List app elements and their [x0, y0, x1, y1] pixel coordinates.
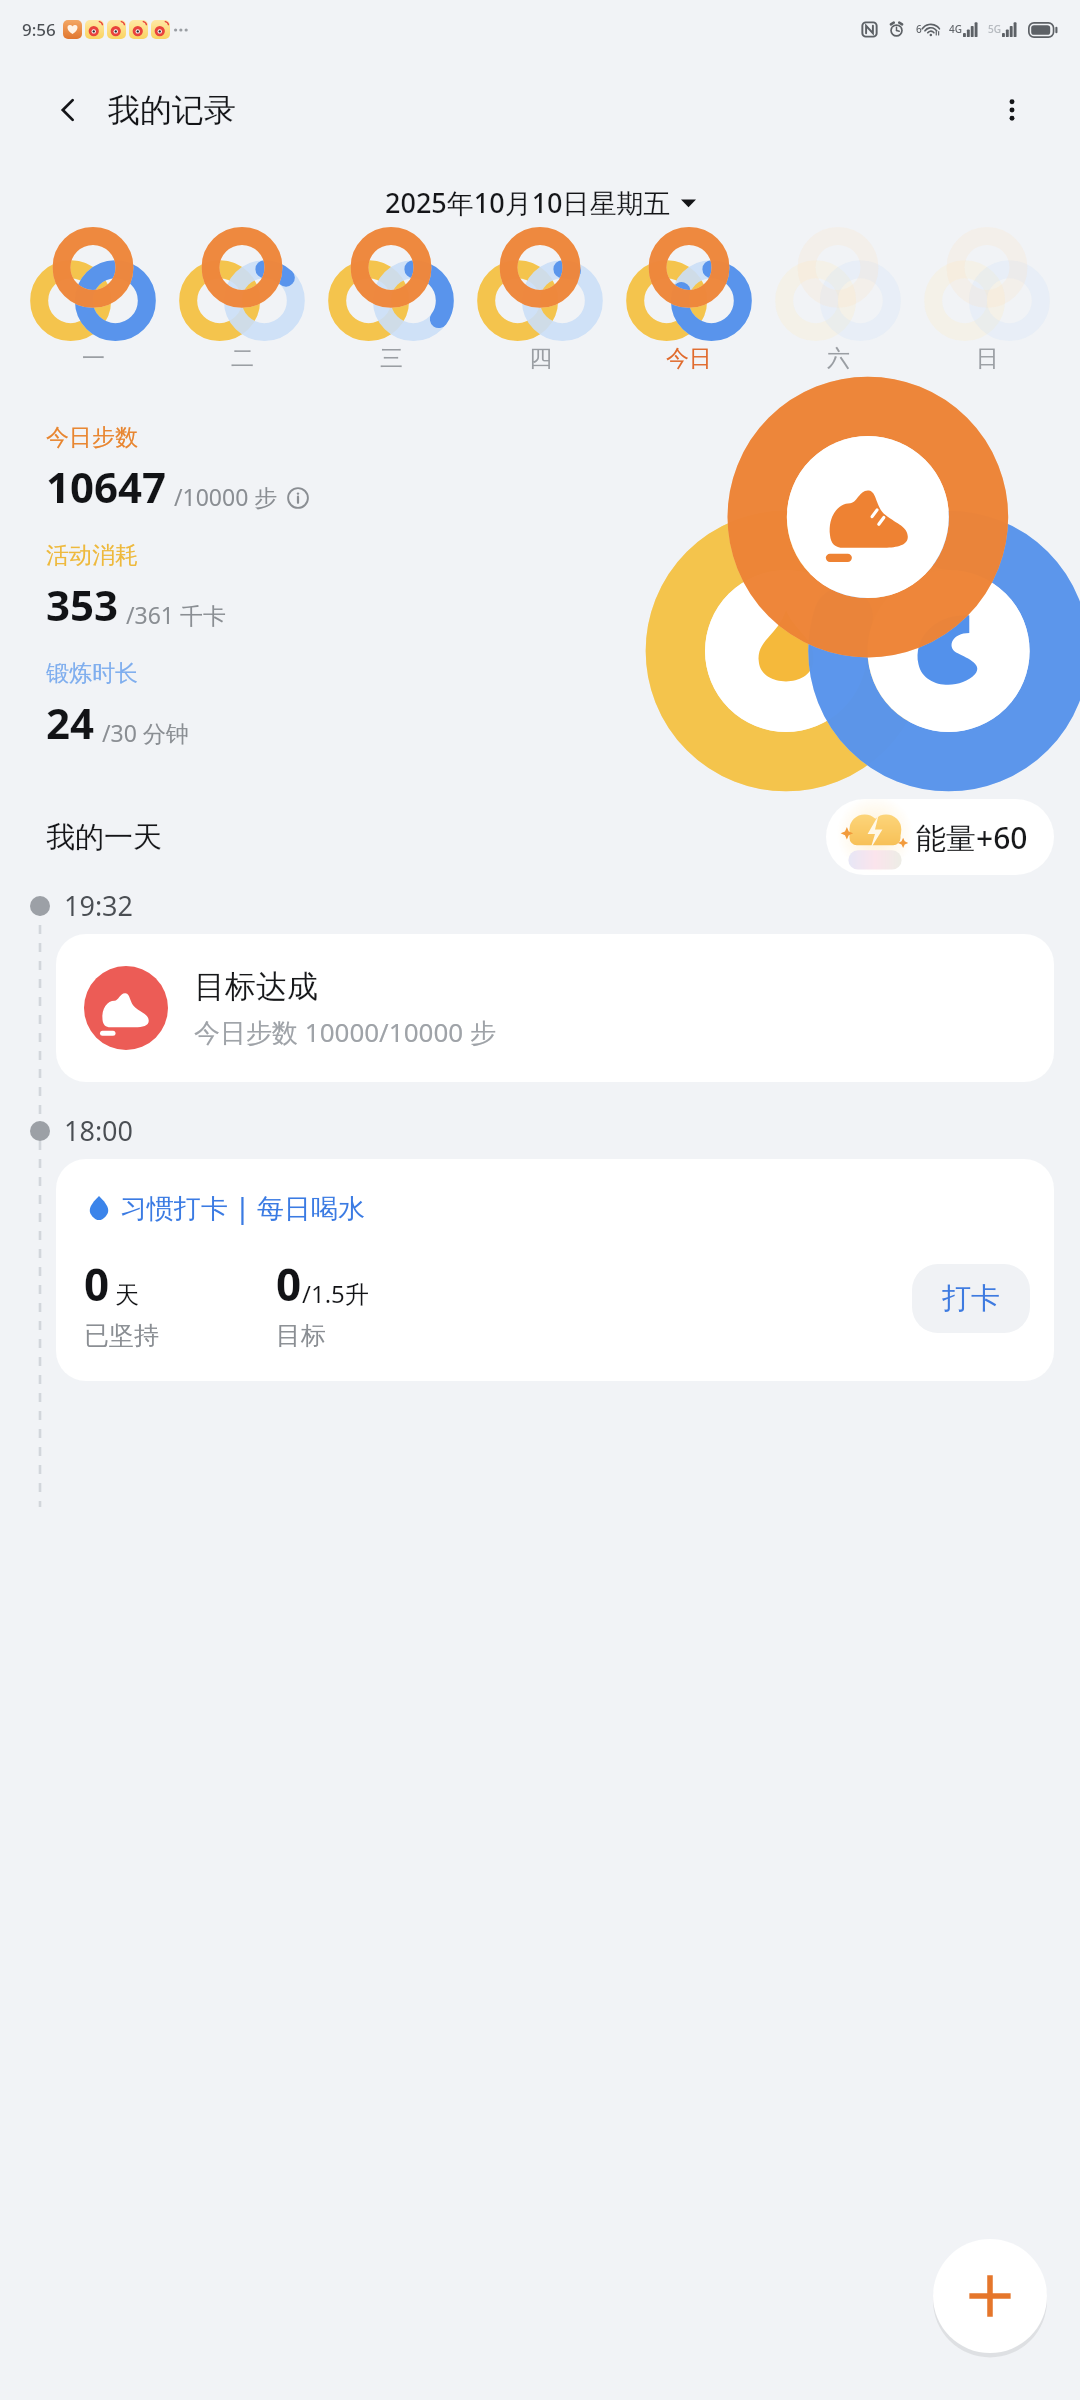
staticText: 六: [827, 344, 850, 373]
staticText: 我的记录: [108, 90, 236, 130]
staticText: 锻炼时长: [46, 659, 138, 688]
button[interactable]: 一: [30, 237, 156, 373]
staticText: 能量+60: [916, 817, 1028, 858]
staticText: 2025年10月10日星期五: [385, 184, 671, 221]
staticText: /10000 步: [174, 481, 278, 512]
staticText: 今日: [666, 344, 712, 373]
staticText: /1.5升: [302, 1277, 369, 1310]
staticText: 三: [380, 344, 403, 373]
staticText: 习惯打卡 | 每日喝水: [120, 1189, 365, 1226]
staticText: 今日步数: [46, 423, 138, 452]
button[interactable]: 习惯打卡 | 每日喝水: [56, 1159, 1054, 1381]
button[interactable]: Add record: [933, 2239, 1047, 2353]
staticText: 四: [529, 344, 552, 373]
button[interactable]: 三: [328, 237, 454, 373]
staticText: 活动消耗: [46, 541, 138, 570]
staticText: 0: [276, 1254, 302, 1314]
button[interactable]: 2025年10月10日星期五: [0, 184, 1080, 221]
staticText: 一: [82, 344, 105, 373]
staticText: 已坚持: [84, 1320, 159, 1351]
staticText: 10647: [46, 458, 167, 515]
staticText: 9:56: [22, 18, 56, 41]
button[interactable]: 今日: [626, 237, 752, 373]
staticText: 19:32: [64, 887, 134, 924]
button[interactable]: 活动消耗: [46, 541, 227, 633]
button[interactable]: 日: [924, 237, 1050, 373]
button[interactable]: Back: [46, 88, 90, 132]
staticText: /30 分钟: [102, 717, 189, 748]
button[interactable]: 今日步数: [46, 423, 309, 515]
staticText: 0: [84, 1254, 110, 1314]
staticText: /361 千卡: [126, 599, 227, 630]
staticText: 目标: [276, 1320, 326, 1351]
button[interactable]: 能量+60: [826, 799, 1054, 875]
staticText: 天: [115, 1280, 139, 1310]
staticText: 4G: [949, 22, 962, 36]
button[interactable]: 打卡: [912, 1264, 1030, 1333]
button[interactable]: 目标达成: [56, 934, 1054, 1082]
staticText: 目标达成: [194, 967, 318, 1006]
button[interactable]: More options: [988, 86, 1036, 134]
staticText: 我的一天: [46, 819, 162, 856]
staticText: 6: [916, 22, 922, 36]
staticText: 353: [46, 576, 119, 633]
staticText: 打卡: [942, 1280, 1000, 1317]
button[interactable]: 六: [775, 237, 901, 373]
staticText: 二: [231, 344, 254, 373]
staticText: 日: [976, 344, 999, 373]
button[interactable]: 二: [179, 237, 305, 373]
staticText: 24: [46, 694, 95, 751]
staticText: 5G: [988, 22, 1001, 36]
staticText: 今日步数 10000/10000 步: [194, 1014, 496, 1050]
staticText: 18:00: [64, 1112, 134, 1149]
button[interactable]: 锻炼时长: [46, 659, 189, 751]
button[interactable]: 四: [477, 237, 603, 373]
